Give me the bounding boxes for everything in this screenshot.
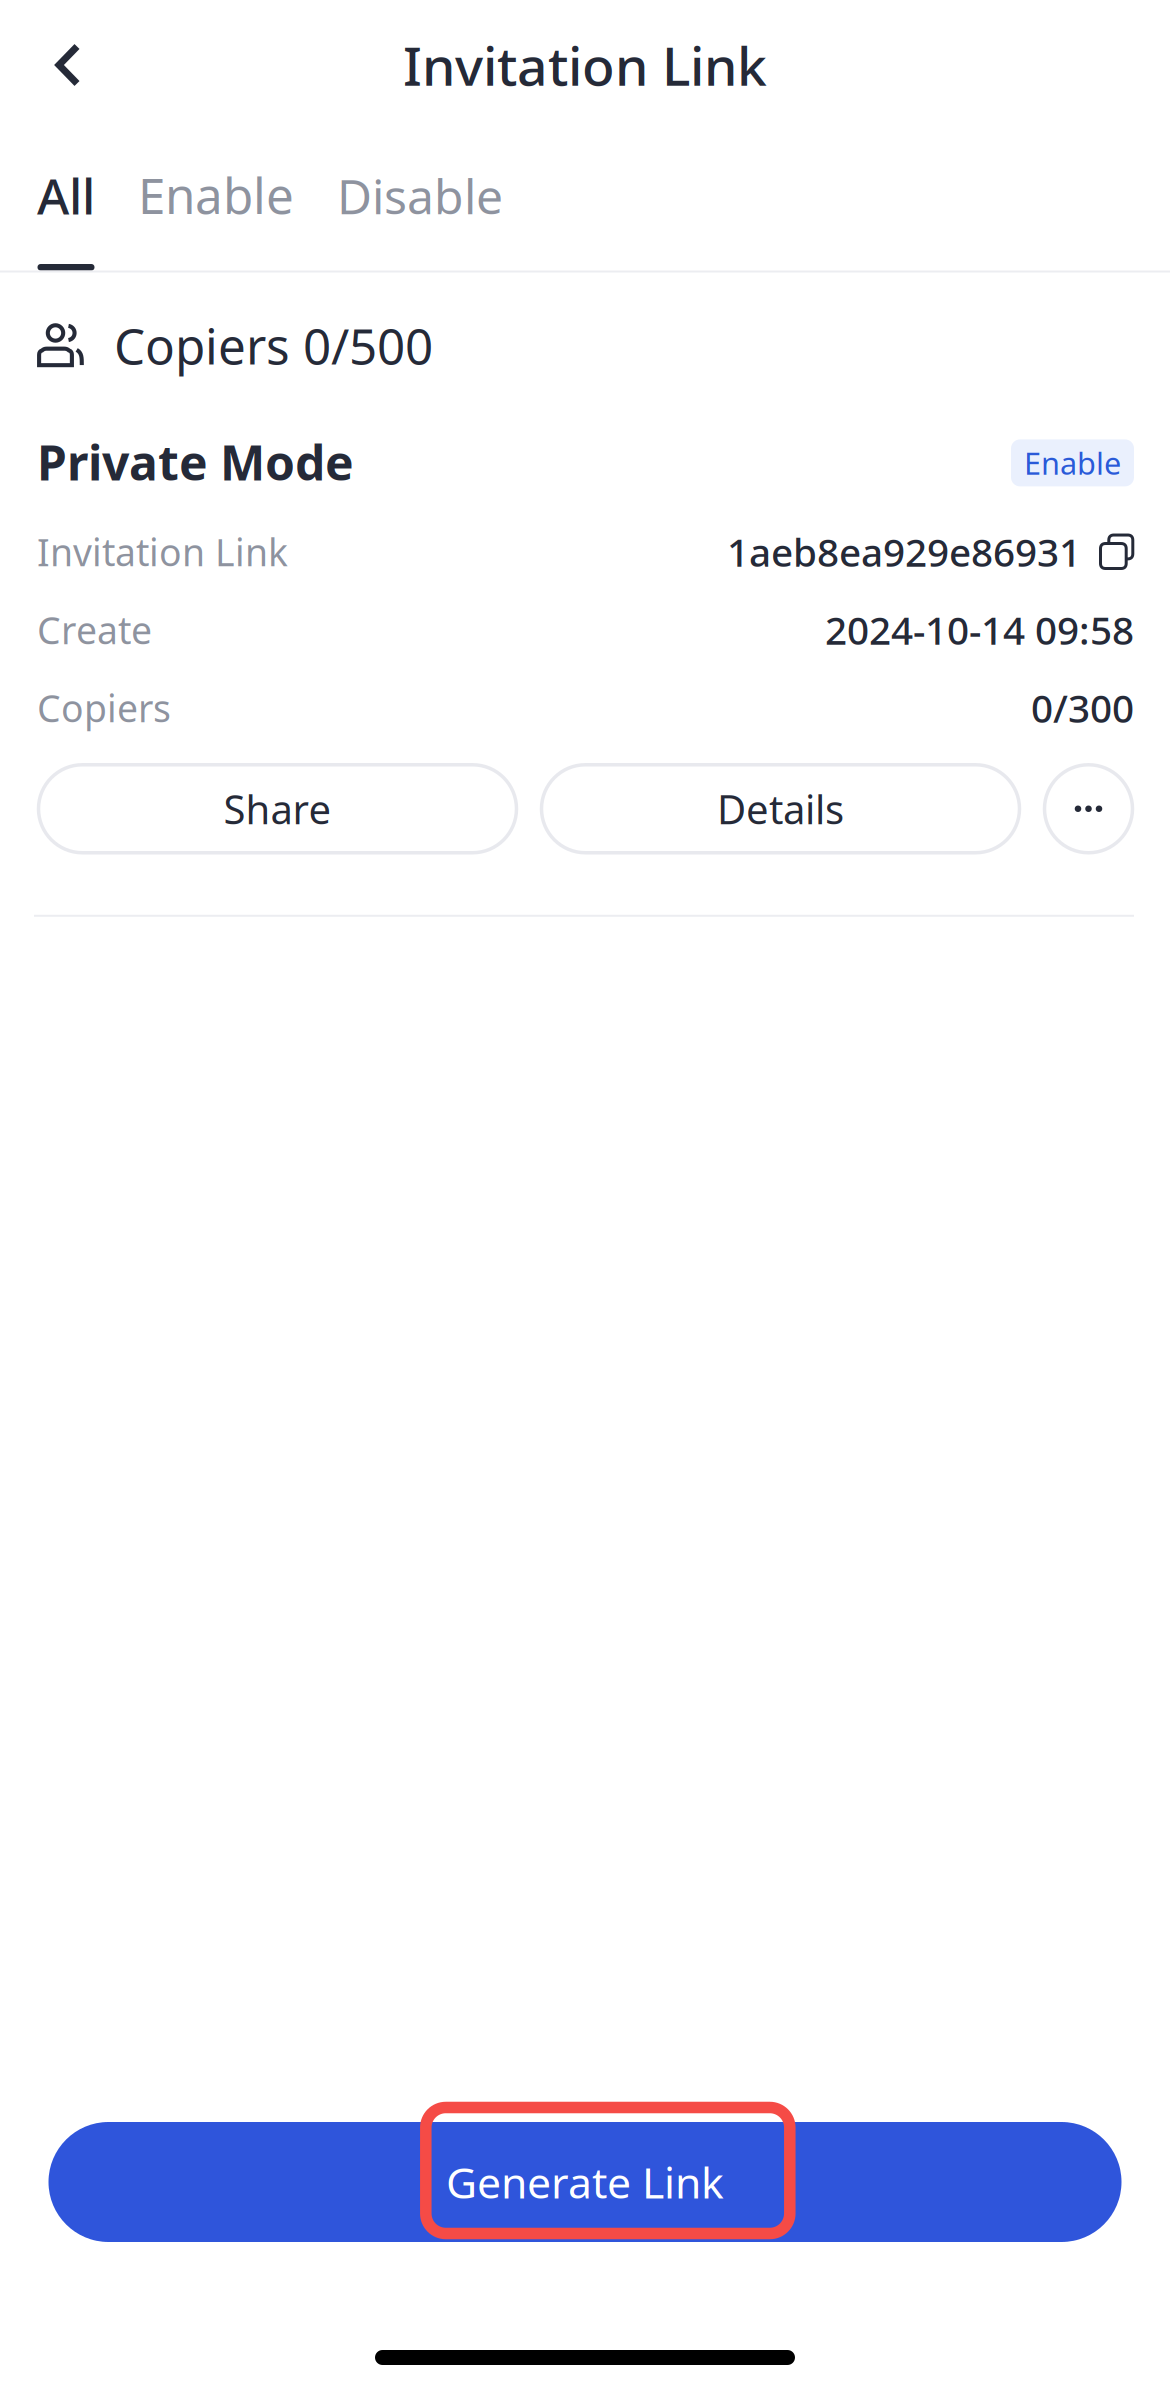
staticText: Create (37, 605, 152, 655)
staticText: Invitation Link (37, 527, 288, 577)
staticText: Share (223, 782, 331, 835)
button[interactable]: Share (38, 765, 516, 853)
staticText: Details (717, 782, 844, 835)
button[interactable]: Details (541, 765, 1019, 853)
staticText: 1aeb8ea929e86931 (727, 526, 1081, 577)
staticText: Enable (1024, 442, 1121, 483)
staticText: Copiers 0/500 (114, 312, 433, 378)
staticText: Disable (337, 164, 503, 227)
button[interactable]: Generate Link (48, 2122, 1121, 2242)
staticText: Private Mode (37, 430, 354, 494)
button[interactable]: Enable (116, 146, 316, 270)
button[interactable]: Disable (316, 148, 528, 270)
staticText: Invitation Link (403, 30, 767, 100)
staticText: 2024-10-14 09:58 (825, 604, 1134, 655)
staticText: 0/300 (1031, 682, 1134, 733)
button[interactable]: More options (1044, 765, 1132, 853)
button[interactable]: Copy invitation link (1081, 525, 1134, 578)
button[interactable]: All (0, 146, 116, 270)
staticText: Generate Link (446, 2154, 724, 2210)
staticText: All (37, 162, 95, 228)
button[interactable]: Back (0, 20, 115, 110)
staticText: Enable (138, 162, 294, 227)
staticText: Copiers (37, 683, 171, 733)
button[interactable]: Enable (1011, 437, 1134, 486)
